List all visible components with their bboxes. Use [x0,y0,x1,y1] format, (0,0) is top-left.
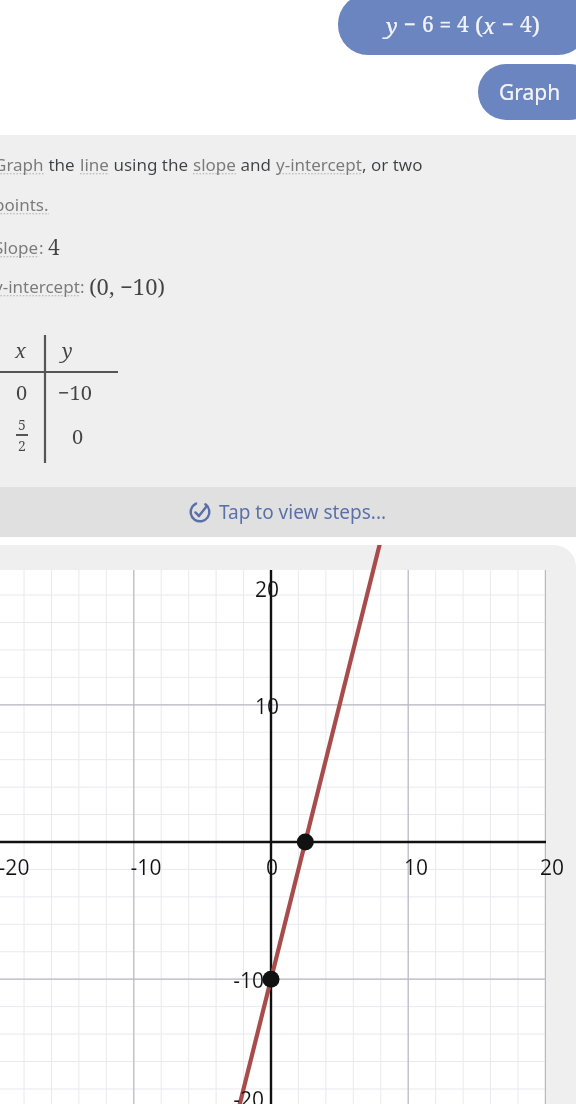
staticText: the [44,153,80,176]
button[interactable]: Graph [478,64,576,120]
staticText: -20 [0,853,38,882]
staticText: 10 [239,692,279,721]
staticText: −10 [58,379,92,406]
staticText: -10 [122,853,170,882]
staticText: Graph [0,153,44,176]
staticText: 10 [392,853,440,882]
staticText: using the [109,153,193,176]
staticText: , or two [362,153,423,176]
staticText: 4 [457,10,469,39]
staticText: -20 [224,1085,264,1104]
button[interactable]: Steps [0,487,576,537]
other: Steps [189,501,211,523]
staticText: 0 [16,379,28,406]
staticText: 2 [18,436,26,455]
staticText: 20 [528,853,576,882]
staticText: points. [0,193,49,216]
staticText: Graph [499,78,561,107]
staticText: x [483,10,496,40]
staticText: Slope [0,236,39,259]
staticText: 0 [72,423,84,450]
staticText: ( [469,9,483,40]
staticText: y-intercept [276,153,362,176]
staticText: = [434,10,457,39]
staticText: 4 [48,233,60,262]
staticText: − [496,10,520,39]
staticText: 6 [422,10,434,39]
staticText: slope [193,153,236,176]
staticText: ) [532,9,540,40]
staticText: Tap to view steps... [219,499,387,525]
staticText: : [39,236,48,259]
staticText: y [386,10,398,40]
staticText: and [236,153,276,176]
button[interactable]: y [338,0,576,55]
staticText: (0, −10) [89,271,166,301]
staticText: : [80,275,89,298]
staticText: 20 [239,575,279,604]
staticText: line [80,153,109,176]
button[interactable]: 20 [0,570,546,1104]
staticText: y-intercept [0,275,80,298]
staticText: x [15,337,26,364]
staticText: 0 [248,853,296,882]
staticText: y [62,337,73,364]
staticText: 4 [520,10,532,39]
staticText: -10 [224,966,264,995]
staticText: − [398,10,422,39]
staticText: 5 [18,415,26,434]
